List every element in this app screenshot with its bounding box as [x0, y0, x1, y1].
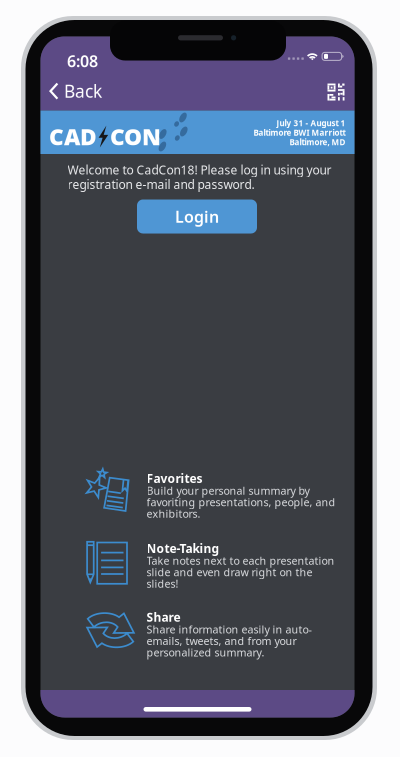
- button[interactable]: Login: [137, 199, 257, 233]
- staticText: Welcome to CadCon18! Please log in using…: [67, 162, 331, 178]
- staticText: Baltimore, MD: [289, 137, 345, 147]
- staticText: Take notes next to each presentation: [146, 554, 334, 568]
- button[interactable]: Scan QR code: [318, 74, 353, 109]
- button[interactable]: Back: [41, 72, 110, 109]
- staticText: Login: [175, 206, 219, 227]
- staticText: favoriting presentations, people, and: [146, 495, 335, 509]
- staticText: Baltimore BWI Marriott: [253, 127, 345, 138]
- staticText: Favorites: [146, 470, 202, 486]
- staticText: Share information easily in auto-: [146, 622, 311, 637]
- staticText: 6:08: [67, 50, 98, 72]
- staticText: Back: [64, 79, 102, 102]
- staticText: personalized summary.: [146, 645, 264, 660]
- staticText: emails, tweets, and from your: [146, 634, 296, 648]
- staticText: CAD: [49, 121, 97, 152]
- staticText: CON: [110, 121, 161, 152]
- staticText: registration e-mail and password.: [67, 176, 254, 192]
- staticText: slides!: [146, 577, 178, 591]
- staticText: Share: [146, 609, 180, 625]
- staticText: Note-Taking: [146, 540, 219, 556]
- staticText: exhibitors.: [146, 506, 200, 521]
- staticText: July 31 - August 1: [276, 118, 345, 128]
- staticText: Build your personal summary by: [146, 483, 309, 498]
- staticText: slide and even draw right on the: [146, 565, 312, 579]
